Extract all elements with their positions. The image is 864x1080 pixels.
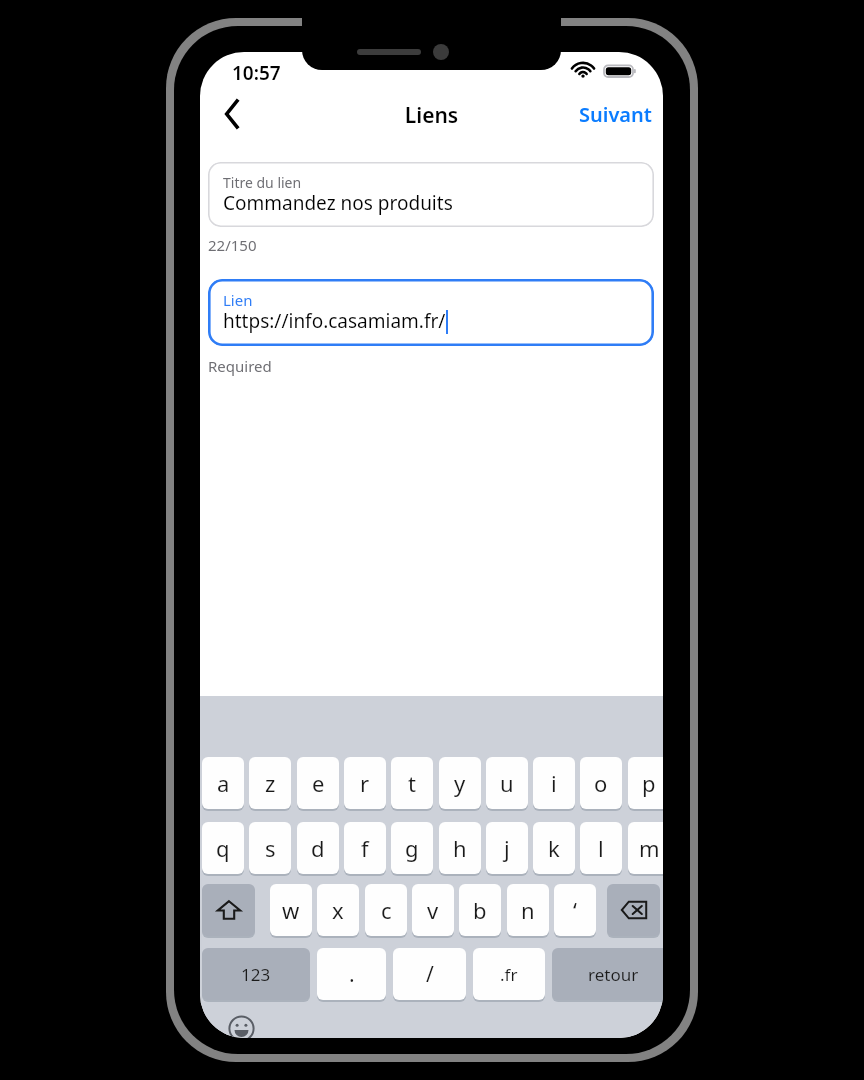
- button[interactable]: ‘: [554, 884, 596, 936]
- staticText: p: [642, 768, 656, 798]
- button[interactable]: Back: [208, 92, 256, 136]
- button[interactable]: k: [533, 822, 575, 874]
- staticText: https://info.casamiam.fr/: [223, 308, 446, 334]
- button[interactable]: retour: [552, 948, 663, 1000]
- button[interactable]: /: [393, 948, 466, 1000]
- button[interactable]: v: [412, 884, 454, 936]
- staticText: Required: [208, 356, 272, 376]
- staticText: /: [426, 960, 434, 989]
- staticText: j: [504, 833, 510, 863]
- button[interactable]: j: [486, 822, 528, 874]
- button[interactable]: a: [202, 757, 244, 809]
- button[interactable]: s: [249, 822, 291, 874]
- button[interactable]: g: [391, 822, 433, 874]
- staticText: x: [332, 895, 344, 925]
- staticText: g: [405, 833, 419, 863]
- button[interactable]: f: [344, 822, 386, 874]
- staticText: 10:57: [232, 60, 281, 86]
- button[interactable]: d: [297, 822, 339, 874]
- staticText: 123: [241, 963, 271, 986]
- staticText: Commandez nos produits: [223, 190, 453, 216]
- staticText: v: [427, 895, 439, 925]
- staticText: l: [598, 833, 604, 863]
- button[interactable]: q: [202, 822, 244, 874]
- staticText: k: [548, 833, 560, 863]
- staticText: Liens: [200, 101, 663, 130]
- staticText: z: [265, 768, 276, 798]
- button[interactable]: r: [344, 757, 386, 809]
- staticText: t: [408, 768, 416, 798]
- button[interactable]: w: [270, 884, 312, 936]
- button[interactable]: c: [365, 884, 407, 936]
- button[interactable]: 123: [202, 948, 310, 1000]
- button[interactable]: Titre du lien: [208, 162, 654, 227]
- button[interactable]: Shift: [202, 884, 255, 936]
- staticText: i: [551, 768, 557, 798]
- button[interactable]: p: [628, 757, 663, 809]
- staticText: .fr: [500, 963, 518, 986]
- staticText: ‘: [573, 895, 577, 925]
- button[interactable]: z: [249, 757, 291, 809]
- staticText: Lien: [223, 290, 253, 310]
- button[interactable]: t: [391, 757, 433, 809]
- button[interactable]: i: [533, 757, 575, 809]
- staticText: e: [312, 768, 325, 798]
- staticText: Suivant: [579, 101, 652, 128]
- staticText: h: [453, 833, 467, 863]
- staticText: q: [216, 833, 230, 863]
- staticText: r: [360, 768, 370, 798]
- staticText: c: [381, 895, 392, 925]
- button[interactable]: h: [439, 822, 481, 874]
- button[interactable]: l: [580, 822, 622, 874]
- staticText: m: [639, 833, 660, 863]
- button[interactable]: y: [439, 757, 481, 809]
- button[interactable]: o: [580, 757, 622, 809]
- staticText: u: [500, 768, 514, 798]
- button[interactable]: x: [317, 884, 359, 936]
- button[interactable]: .fr: [473, 948, 545, 1000]
- button[interactable]: Emoji: [226, 1013, 256, 1038]
- staticText: a: [217, 768, 230, 798]
- button[interactable]: u: [486, 757, 528, 809]
- staticText: o: [594, 768, 608, 798]
- staticText: Titre du lien: [223, 173, 302, 192]
- button[interactable]: Backspace: [607, 884, 660, 936]
- staticText: s: [265, 833, 276, 863]
- staticText: 22/150: [208, 235, 257, 255]
- staticText: w: [282, 895, 300, 925]
- button[interactable]: m: [628, 822, 663, 874]
- staticText: retour: [588, 963, 639, 986]
- button[interactable]: Lien: [208, 279, 654, 346]
- button[interactable]: e: [297, 757, 339, 809]
- staticText: f: [361, 833, 369, 863]
- staticText: n: [521, 895, 535, 925]
- button[interactable]: .: [317, 948, 386, 1000]
- staticText: y: [454, 768, 466, 798]
- staticText: .: [349, 960, 355, 989]
- button[interactable]: Suivant: [573, 92, 657, 136]
- staticText: d: [311, 833, 325, 863]
- button[interactable]: b: [459, 884, 501, 936]
- button[interactable]: n: [507, 884, 549, 936]
- staticText: b: [473, 895, 487, 925]
